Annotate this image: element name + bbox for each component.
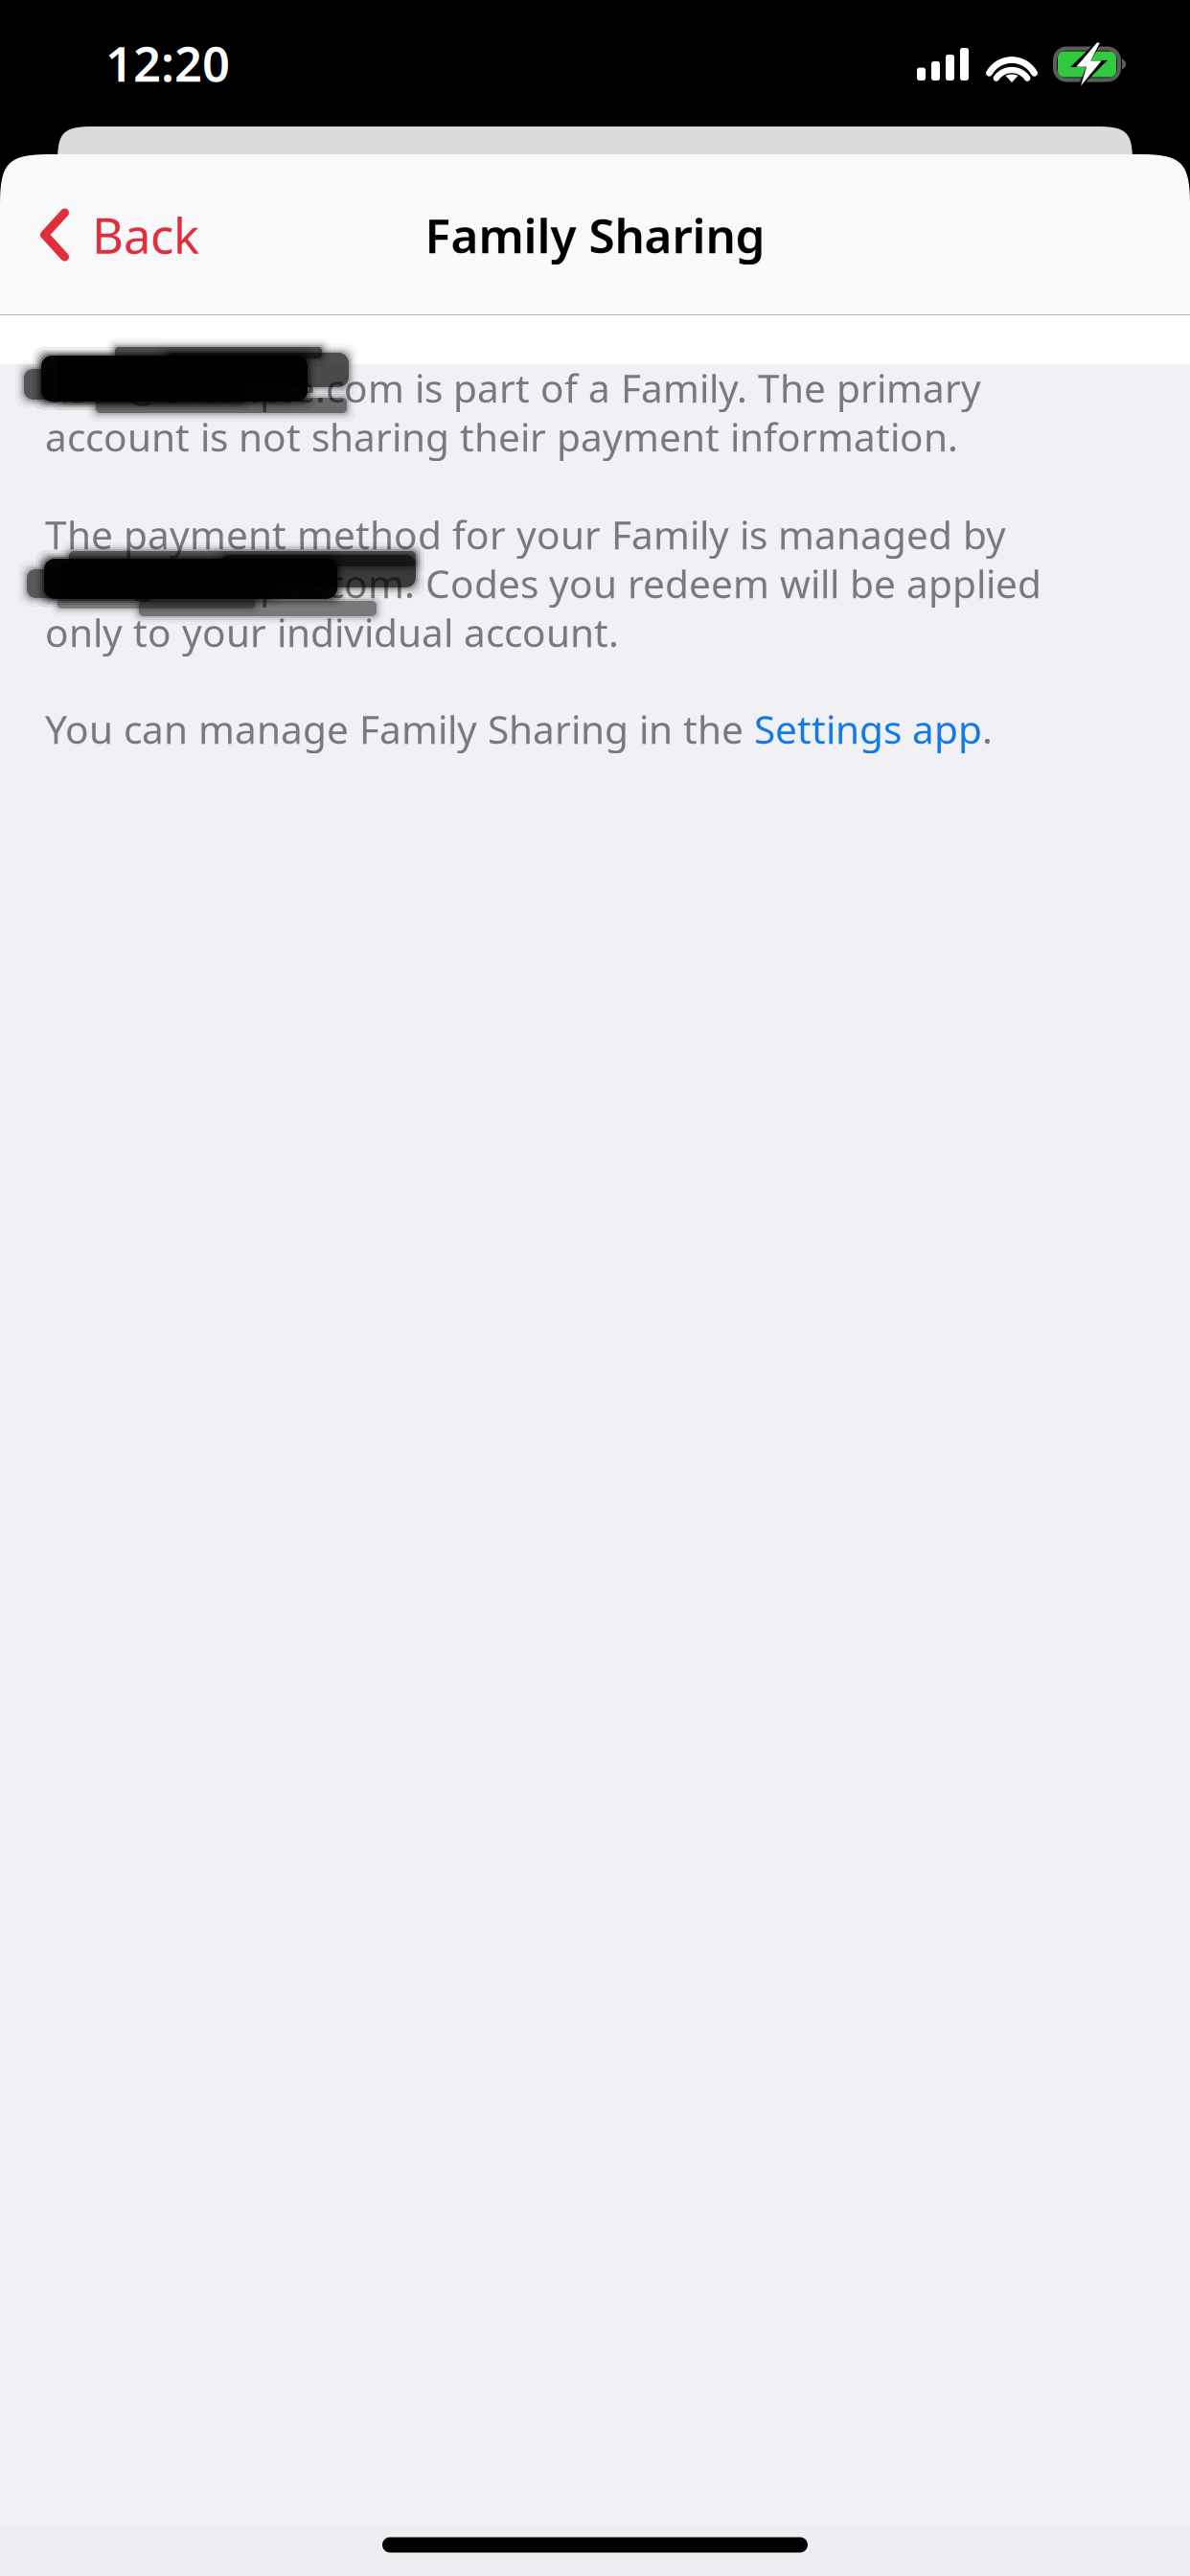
staticText: . (982, 702, 993, 755)
button[interactable]: Settings app (754, 702, 982, 755)
staticText: 12:20 (105, 30, 230, 96)
staticText: You can manage Family Sharing in the (45, 702, 754, 755)
staticText: user@example.com is part of a Family. Th… (45, 361, 981, 414)
button[interactable]: Back (0, 172, 224, 298)
staticText: user@example.com. Codes you redeem will … (45, 557, 1041, 610)
staticText: Back (92, 202, 199, 268)
staticText: The payment method for your Family is ma… (45, 508, 1006, 561)
staticText: Settings app (754, 702, 982, 755)
staticText: account is not sharing their payment inf… (45, 410, 958, 463)
staticText: Family Sharing (425, 203, 765, 267)
staticText: only to your individual account. (45, 606, 619, 659)
